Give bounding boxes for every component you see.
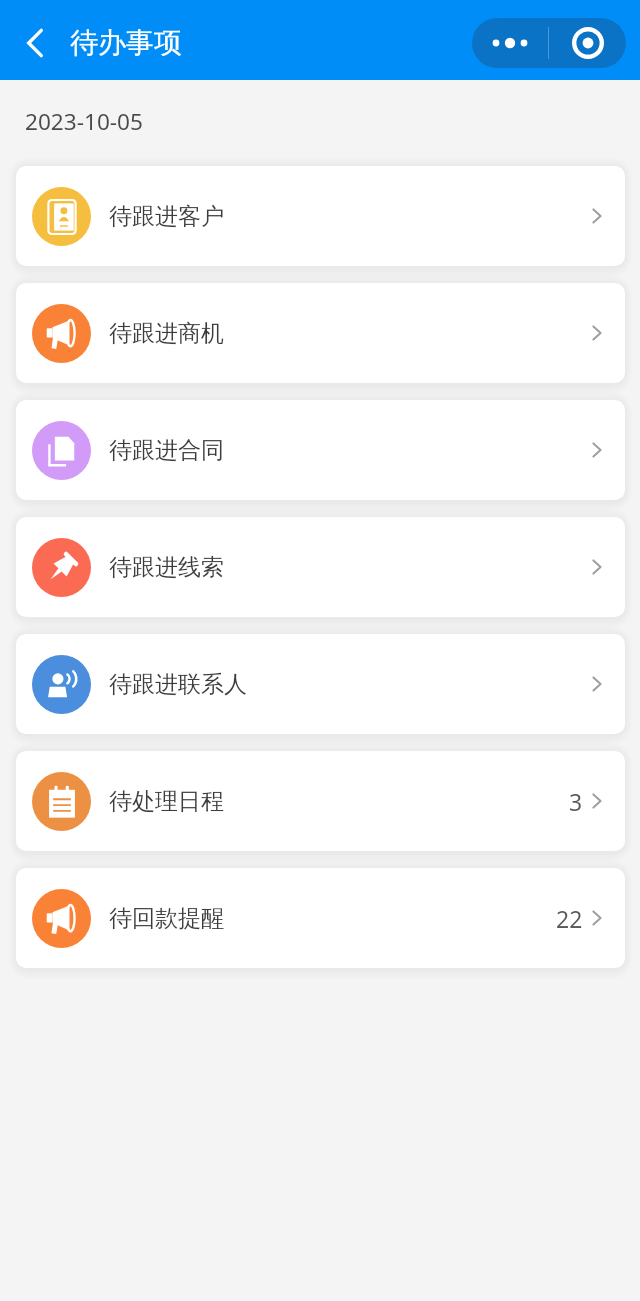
staticText: 待处理日程 [109,787,224,816]
button[interactable]: 待跟进商机 [16,283,625,383]
button[interactable]: 待跟进联系人 [16,634,625,734]
staticText: 3 [569,786,583,817]
button[interactable]: Close mini program [549,18,626,68]
button[interactable]: 待跟进线索 [16,517,625,617]
staticText: 待办事项 [70,25,182,60]
staticText: 待跟进联系人 [109,670,247,699]
button[interactable]: More options [472,18,548,68]
button[interactable]: Back [11,19,59,67]
button[interactable]: 待处理日程 [16,751,625,851]
staticText: 待跟进商机 [109,319,224,348]
staticText: 22 [556,903,583,934]
staticText: 2023-10-05 [25,106,143,137]
button[interactable]: 待跟进合同 [16,400,625,500]
staticText: 待跟进合同 [109,436,224,465]
staticText: 待回款提醒 [109,904,224,933]
staticText: 待跟进线索 [109,553,224,582]
button[interactable]: 待回款提醒 [16,868,625,968]
staticText: 待跟进客户 [109,202,224,231]
button[interactable]: 待跟进客户 [16,166,625,266]
